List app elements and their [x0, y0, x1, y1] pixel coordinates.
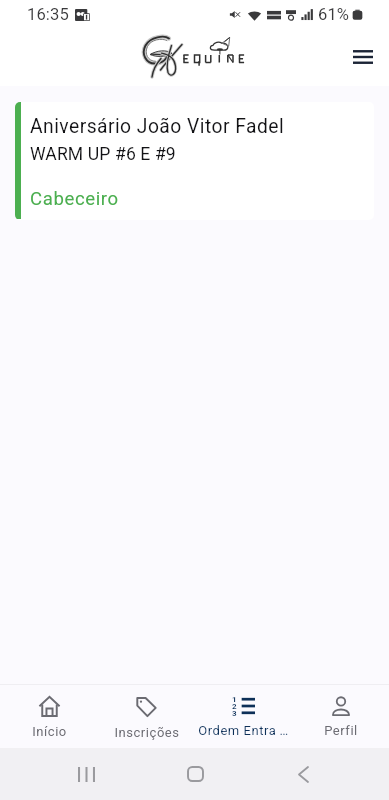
staticText: Aniversário João Vitor Fadel	[30, 115, 285, 138]
staticText: Perfil	[324, 723, 358, 738]
button[interactable]: Back	[283, 754, 323, 794]
button[interactable]: Aniversário João Vitor Fadel	[15, 102, 374, 220]
staticText: Início	[32, 724, 67, 739]
button[interactable]: Perfil	[292, 686, 389, 748]
staticText: 61%	[318, 5, 350, 24]
staticText: 1	[232, 695, 237, 704]
staticText: 2	[232, 702, 237, 711]
staticText: 16:35	[27, 5, 69, 24]
button[interactable]: Recent apps	[66, 754, 106, 794]
staticText: Cabeceiro	[30, 188, 119, 210]
button[interactable]: Início	[0, 686, 98, 748]
button[interactable]: Inscrições	[98, 686, 195, 748]
button[interactable]: Menu	[338, 33, 388, 81]
staticText: Inscrições	[114, 725, 180, 740]
staticText: WARM UP #6 E #9	[30, 144, 176, 165]
button[interactable]: Home	[175, 754, 215, 794]
button[interactable]: 1	[195, 686, 292, 748]
staticText: Ordem Entra …	[198, 723, 289, 738]
staticText: 3	[232, 709, 237, 718]
